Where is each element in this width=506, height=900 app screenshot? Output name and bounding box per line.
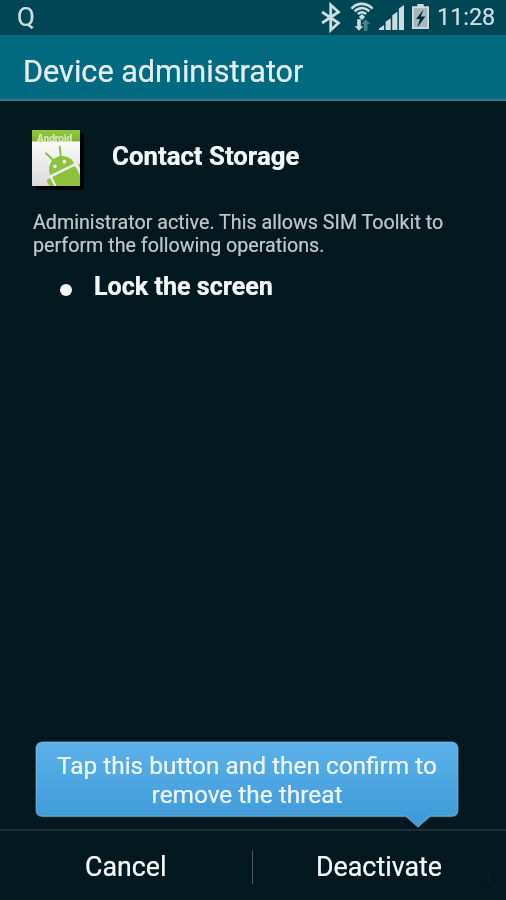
button[interactable]: Cancel (0, 833, 252, 900)
staticText: Device administrator (23, 54, 304, 90)
staticText: Tap this button and then confirm to remo… (47, 751, 447, 809)
staticText: Lock the screen (94, 272, 273, 301)
staticText: 11:28 (437, 3, 496, 30)
staticText: Q (17, 2, 35, 30)
staticText: 365 (388, 834, 495, 900)
staticText: Administrator active. This allows SIM To… (33, 211, 458, 256)
staticText: Contact Storage (112, 141, 300, 171)
button[interactable]: Search (12, 2, 40, 30)
staticText: Android (37, 133, 73, 145)
button[interactable]: Deactivate (253, 833, 506, 900)
staticText: Deactivate (316, 851, 443, 882)
staticText: Cancel (85, 851, 167, 882)
